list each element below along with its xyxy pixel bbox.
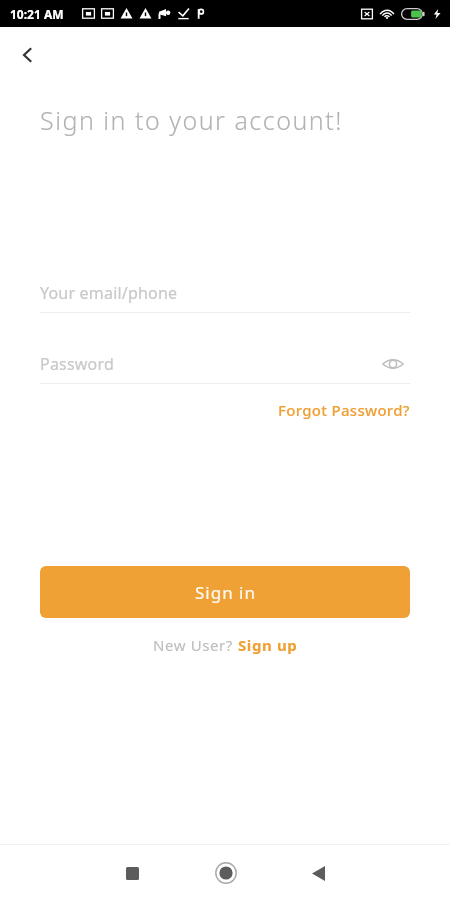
- button[interactable]: Show password: [376, 347, 410, 381]
- button[interactable]: Recents: [86, 849, 179, 897]
- staticText: Your email/phone: [40, 282, 178, 304]
- button[interactable]: Password: [40, 353, 114, 375]
- button[interactable]: Your email/phone: [40, 273, 410, 313]
- button[interactable]: Back: [272, 849, 365, 897]
- staticText: Sign in to your account!: [40, 103, 343, 137]
- button[interactable]: Sign up: [238, 635, 298, 655]
- staticText: 10:21 AM: [10, 6, 64, 22]
- staticText: Sign up: [238, 635, 298, 655]
- button[interactable]: Home: [179, 849, 272, 897]
- staticText: Forgot Password?: [278, 400, 410, 420]
- staticText: New User?: [153, 635, 238, 655]
- button[interactable]: Sign in: [40, 566, 410, 618]
- button[interactable]: Forgot Password?: [278, 396, 410, 424]
- staticText: Sign in: [195, 581, 256, 604]
- button[interactable]: Back: [0, 27, 56, 83]
